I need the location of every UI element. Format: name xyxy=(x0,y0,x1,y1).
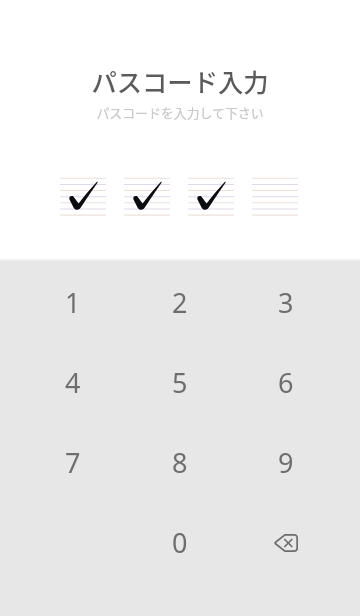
staticText: 1 xyxy=(65,284,81,321)
button[interactable]: 5 xyxy=(140,350,220,414)
button[interactable]: 7 xyxy=(33,430,113,494)
button[interactable]: 8 xyxy=(140,430,220,494)
staticText: 2 xyxy=(172,284,188,321)
staticText: 0 xyxy=(172,524,188,561)
button[interactable]: 6 xyxy=(246,350,326,414)
staticText: パスコードを入力して下さい xyxy=(96,103,264,122)
button[interactable]: 0 xyxy=(140,510,220,574)
staticText: 4 xyxy=(65,364,81,401)
button[interactable]: 3 xyxy=(246,270,326,334)
staticText: 9 xyxy=(278,444,294,481)
button[interactable]: 1 xyxy=(33,270,113,334)
button[interactable]: 4 xyxy=(33,350,113,414)
staticText: パスコード入力 xyxy=(91,63,269,100)
button[interactable]: Delete xyxy=(246,510,326,574)
button[interactable]: 9 xyxy=(246,430,326,494)
staticText: 6 xyxy=(278,364,294,401)
button[interactable]: 2 xyxy=(140,270,220,334)
staticText: 3 xyxy=(278,284,294,321)
staticText: 8 xyxy=(172,444,188,481)
staticText: 5 xyxy=(172,364,188,401)
staticText: 7 xyxy=(65,444,81,481)
